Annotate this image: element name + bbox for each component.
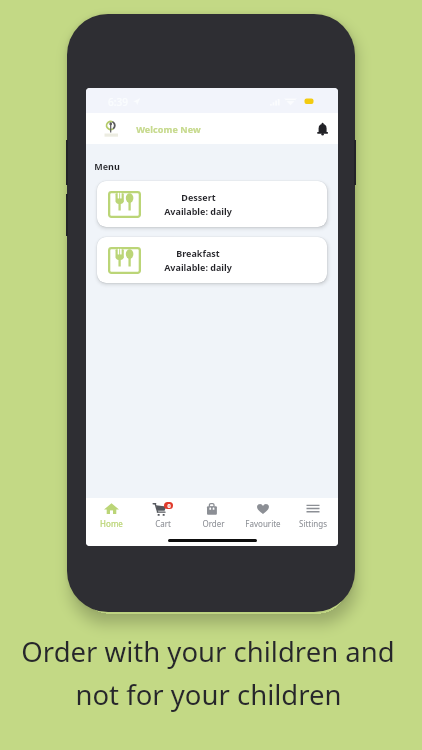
staticText: Order with your children and: [21, 633, 395, 670]
staticText: Available: daily: [164, 261, 232, 273]
staticText: Favourite: [245, 518, 281, 529]
staticText: Home: [100, 518, 123, 529]
staticText: Welcome New: [136, 123, 201, 135]
staticText: Available: daily: [164, 205, 232, 217]
staticText: 0: [167, 502, 171, 509]
staticText: not for your children: [75, 676, 342, 713]
staticText: Sittings: [299, 518, 327, 529]
button[interactable]: Breakfast: [97, 237, 327, 283]
staticText: Menu: [94, 160, 120, 172]
staticText: Cart: [155, 518, 171, 529]
staticText: Breakfast: [176, 247, 220, 259]
button[interactable]: Notifications: [316, 121, 332, 139]
staticText: Dessert: [181, 191, 216, 203]
button[interactable]: Dessert: [97, 181, 327, 227]
button[interactable]: Sittings: [288, 502, 338, 529]
button[interactable]: 0: [137, 502, 188, 529]
button[interactable]: Home: [86, 502, 137, 529]
button[interactable]: Order: [188, 502, 238, 529]
button[interactable]: Favourite: [238, 502, 288, 529]
staticText: Order: [202, 518, 225, 529]
